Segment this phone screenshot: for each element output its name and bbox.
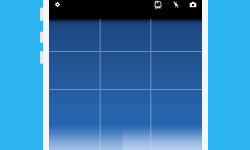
- button[interactable]: Camera settings: [51, 0, 63, 10]
- button[interactable]: HDR auto: [152, 0, 164, 10]
- staticText: HDR: [155, 0, 161, 10]
- button[interactable]: Flash off: [170, 0, 182, 10]
- button[interactable]: Switch camera: [187, 0, 199, 10]
